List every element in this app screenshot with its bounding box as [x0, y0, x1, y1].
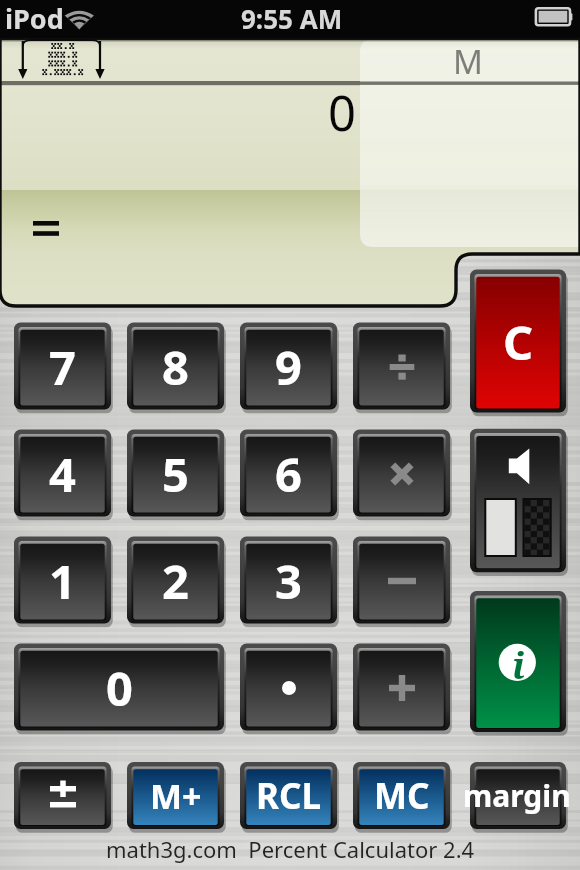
staticText: 4 — [49, 442, 76, 506]
staticText: 6 — [275, 442, 302, 506]
button[interactable]: RCL — [240, 762, 337, 829]
button[interactable]: M+ — [127, 762, 224, 829]
staticText: 3 — [275, 549, 302, 613]
staticText: margin — [463, 775, 571, 816]
button[interactable]: 9 — [240, 323, 337, 410]
button[interactable]: 5 — [127, 430, 224, 517]
button[interactable]: 3 — [240, 537, 337, 624]
button[interactable]: 0 — [14, 644, 224, 731]
staticText: RCL — [256, 772, 321, 820]
button[interactable]: M — [360, 39, 575, 82]
staticText: 1 — [49, 549, 76, 613]
button[interactable]: Divide — [353, 323, 450, 410]
staticText: 7 — [49, 335, 76, 399]
staticText: iPod — [5, 0, 64, 37]
button[interactable]: 4 — [14, 430, 111, 517]
button[interactable]: Plus minus sign — [14, 762, 111, 829]
button[interactable]: Sound toggle — [470, 428, 566, 572]
button[interactable]: Subtract — [353, 537, 450, 624]
staticText: i — [512, 641, 525, 690]
staticText: 9 — [275, 335, 302, 399]
staticText: 8 — [162, 335, 189, 399]
staticText: MC — [374, 772, 430, 820]
button[interactable]: margin — [460, 762, 574, 829]
staticText: M — [453, 39, 483, 82]
staticText: 0 — [328, 79, 357, 135]
button[interactable]: Multiply — [353, 430, 450, 517]
staticText: 5 — [162, 442, 189, 506]
button[interactable]: 1 — [14, 537, 111, 624]
button[interactable]: 8 — [127, 323, 224, 410]
button[interactable]: 2 — [127, 537, 224, 624]
staticText: C — [503, 310, 534, 374]
staticText: 2 — [162, 549, 189, 613]
button[interactable]: C — [470, 270, 566, 413]
staticText: M+ — [150, 773, 202, 819]
button[interactable]: MC — [353, 762, 450, 829]
staticText: math3g.com Percent Calculator 2.4 — [106, 834, 475, 864]
button[interactable]: 6 — [240, 430, 337, 517]
button[interactable]: 7 — [14, 323, 111, 410]
button[interactable]: Tape history — [12, 40, 112, 84]
button[interactable]: Decimal point — [240, 644, 337, 731]
button[interactable]: Add — [353, 644, 450, 731]
staticText: 0 — [106, 656, 133, 720]
staticText: 9:55 AM — [241, 1, 343, 36]
button[interactable]: Info — [470, 591, 566, 732]
